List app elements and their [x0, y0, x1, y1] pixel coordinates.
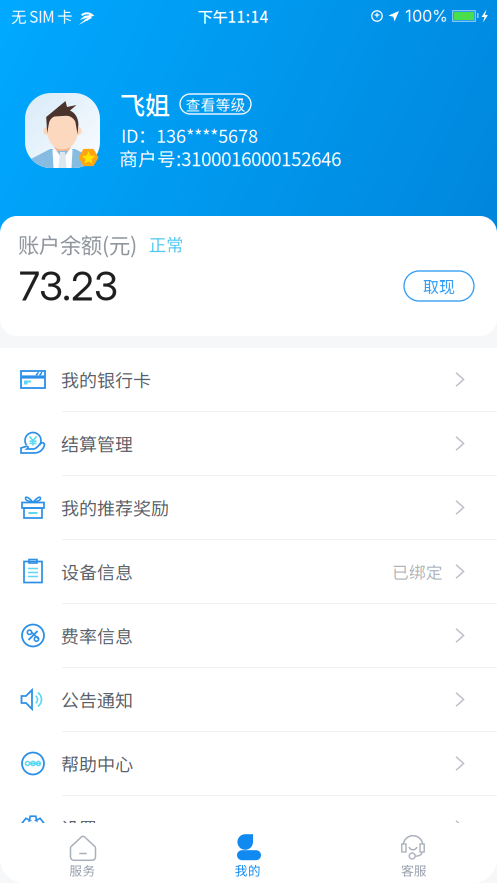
button[interactable]: 帮助中心 [0, 732, 497, 796]
button[interactable]: 设置 [0, 796, 497, 860]
staticText: 我的 [235, 861, 261, 879]
staticText: 费率信息 [61, 622, 133, 649]
staticText: ID：136****5678 [121, 122, 258, 148]
staticText: 飞姐 [120, 86, 170, 122]
staticText: 公告通知 [61, 686, 133, 713]
button[interactable]: 我的 [166, 823, 331, 883]
button[interactable]: 服务 [0, 823, 165, 883]
staticText: 我的推荐奖励 [61, 494, 169, 521]
staticText: 帮助中心 [61, 750, 133, 777]
staticText: 结算管理 [61, 430, 133, 457]
staticText: 服务 [69, 861, 95, 879]
button[interactable]: 我的推荐奖励 [0, 476, 497, 540]
button[interactable]: 查看等级 [180, 94, 251, 114]
button[interactable]: 结算管理 [0, 412, 497, 476]
staticText: 无 SIM 卡 [11, 5, 72, 27]
staticText: 取现 [423, 274, 455, 298]
staticText: 73.23 [19, 262, 118, 310]
staticText: 商户号:3100016000152646 [119, 144, 341, 171]
staticText: 已绑定 [392, 559, 443, 583]
staticText: 正常 [149, 231, 183, 257]
staticText: 查看等级 [185, 93, 245, 115]
staticText: 客服 [401, 861, 427, 879]
button[interactable]: 设备信息 [0, 540, 497, 604]
staticText: 下午11:14 [197, 5, 268, 27]
button[interactable]: 公告通知 [0, 668, 497, 732]
staticText: 设备信息 [61, 558, 133, 585]
button[interactable]: 费率信息 [0, 604, 497, 668]
staticText: 设置 [61, 814, 97, 841]
button[interactable]: 取现 [404, 271, 474, 301]
button[interactable]: 我的银行卡 [0, 348, 497, 412]
button[interactable]: 客服 [332, 823, 497, 883]
staticText: 账户余额(元) [18, 229, 137, 259]
staticText: 我的银行卡 [61, 366, 151, 393]
staticText: 100% [405, 6, 448, 26]
